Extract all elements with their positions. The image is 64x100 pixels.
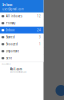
staticText: 3 xyxy=(39,35,41,39)
staticText: Inbox xyxy=(6,28,14,32)
button[interactable]: All inboxes xyxy=(0,13,43,20)
button[interactable]: Snoozed xyxy=(0,41,43,48)
staticText: Snoozed xyxy=(6,42,18,46)
staticText: ALL LABELS xyxy=(2,63,11,65)
button[interactable]: Primary xyxy=(0,20,43,27)
staticText: Inbox xyxy=(2,2,12,7)
staticText: 24 xyxy=(37,28,41,32)
button[interactable]: Important xyxy=(0,48,43,55)
staticText: 12 xyxy=(37,14,41,18)
staticText: 1 xyxy=(39,42,41,46)
staticText: last synced 3 minutes ago xyxy=(9,71,26,73)
staticText: All inboxes xyxy=(6,14,22,18)
button[interactable]: Sent xyxy=(0,55,43,62)
staticText: user@gmail.com xyxy=(2,7,23,11)
button[interactable]: Compose xyxy=(55,85,64,96)
staticText: Primary xyxy=(6,21,15,25)
button[interactable]: Inbox xyxy=(0,27,43,34)
button[interactable]: Starred xyxy=(0,34,43,41)
staticText: Mail.com xyxy=(9,67,22,71)
staticText: Starred xyxy=(6,35,15,39)
staticText: Sent xyxy=(6,56,12,60)
staticText: Important xyxy=(6,49,19,53)
